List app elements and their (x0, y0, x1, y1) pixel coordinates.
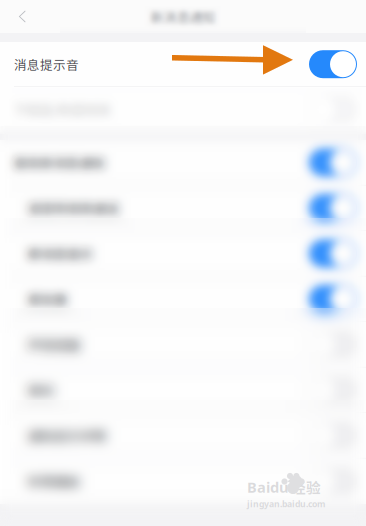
button[interactable]: 接收新消息通知 (0, 140, 366, 185)
staticText: 声音提醒 (28, 335, 80, 354)
staticText: 下班后/休息时间 (14, 100, 110, 119)
staticText: 接收新消息通知 (14, 153, 105, 172)
button[interactable]: 振动 (0, 367, 366, 413)
button[interactable]: 听筒播放 (0, 458, 366, 504)
button[interactable]: 朋友圈 (0, 276, 366, 322)
staticText: 振动 (28, 381, 54, 399)
staticText: 消息提示音 (14, 55, 79, 73)
staticText: 朋友圈 (28, 290, 67, 308)
button[interactable]: 通知显示详情 (0, 413, 366, 458)
button[interactable]: 下班后/休息时间 (0, 87, 366, 132)
button[interactable]: Back (0, 0, 44, 33)
button[interactable]: 语音和视频通话 (0, 185, 366, 231)
staticText: 新消息通知 (150, 7, 215, 26)
staticText: jingyan.baidu.com (247, 498, 325, 510)
staticText: 语音和视频通话 (28, 199, 119, 217)
staticText: 经验 (291, 476, 321, 498)
button[interactable]: 群消息提示 (0, 231, 366, 276)
staticText: 群消息提示 (28, 244, 93, 263)
button[interactable]: 消息提示音 (0, 42, 366, 87)
staticText: Baidu (247, 477, 289, 497)
staticText: 听筒播放 (28, 472, 80, 490)
staticText: 通知显示详情 (28, 426, 106, 445)
button[interactable]: 声音提醒 (0, 322, 366, 367)
